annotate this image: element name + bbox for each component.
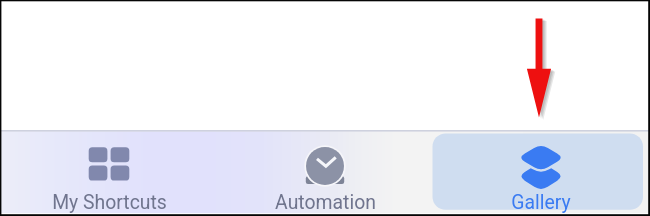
button[interactable]: My Shortcuts [4, 134, 215, 210]
button[interactable]: Automation [218, 134, 430, 210]
staticText: Automation [275, 191, 376, 214]
other: Annotation arrow [0, 0, 650, 216]
button[interactable]: Gallery [433, 134, 644, 210]
staticText: My Shortcuts [52, 191, 167, 214]
staticText: Gallery [511, 191, 571, 214]
